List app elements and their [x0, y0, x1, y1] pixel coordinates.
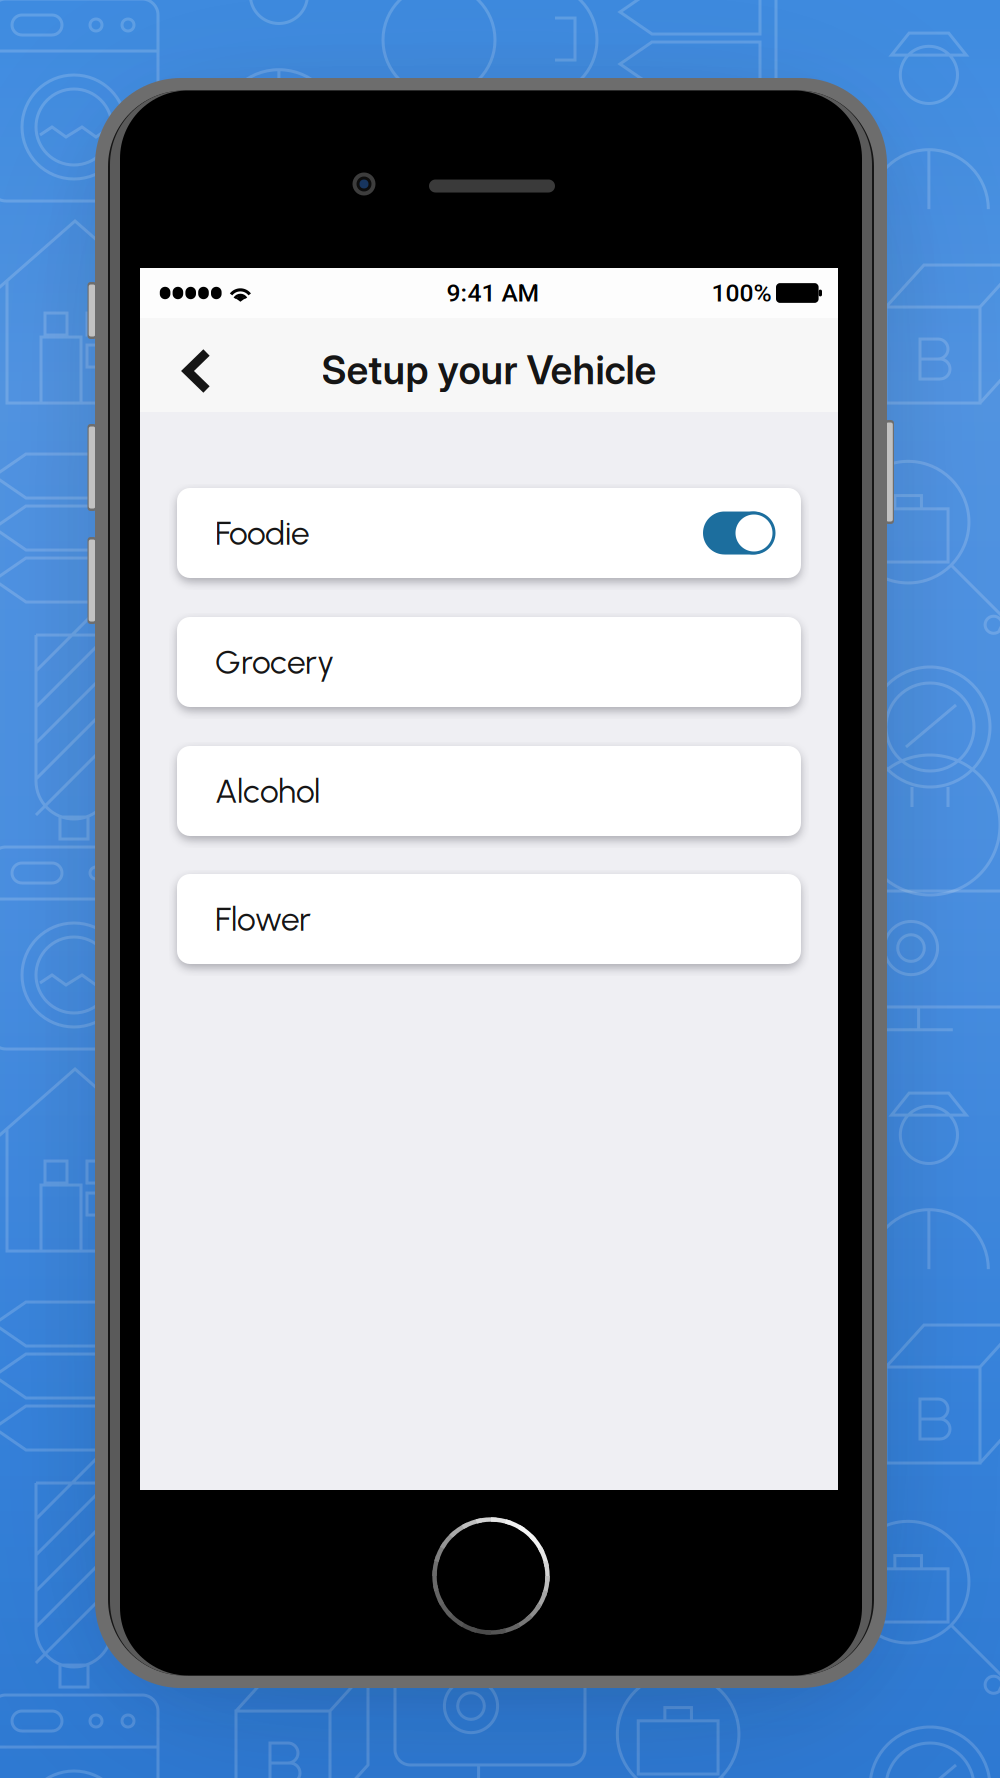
button[interactable]: Foodie	[177, 488, 801, 578]
staticText: 100%	[711, 278, 771, 307]
staticText: Flower	[215, 899, 311, 939]
staticText: Setup your Vehicle	[321, 346, 656, 393]
staticText: 9:41 AM	[446, 278, 539, 307]
staticText: Foodie	[215, 513, 310, 553]
button[interactable]: Grocery	[177, 617, 801, 707]
button[interactable]: Flower	[177, 874, 801, 964]
button[interactable]: Alcohol	[177, 746, 801, 836]
button[interactable]: Back	[162, 334, 232, 408]
staticText: Grocery	[215, 642, 334, 682]
staticText: Alcohol	[215, 771, 320, 811]
button[interactable]: Home	[426, 1511, 556, 1641]
